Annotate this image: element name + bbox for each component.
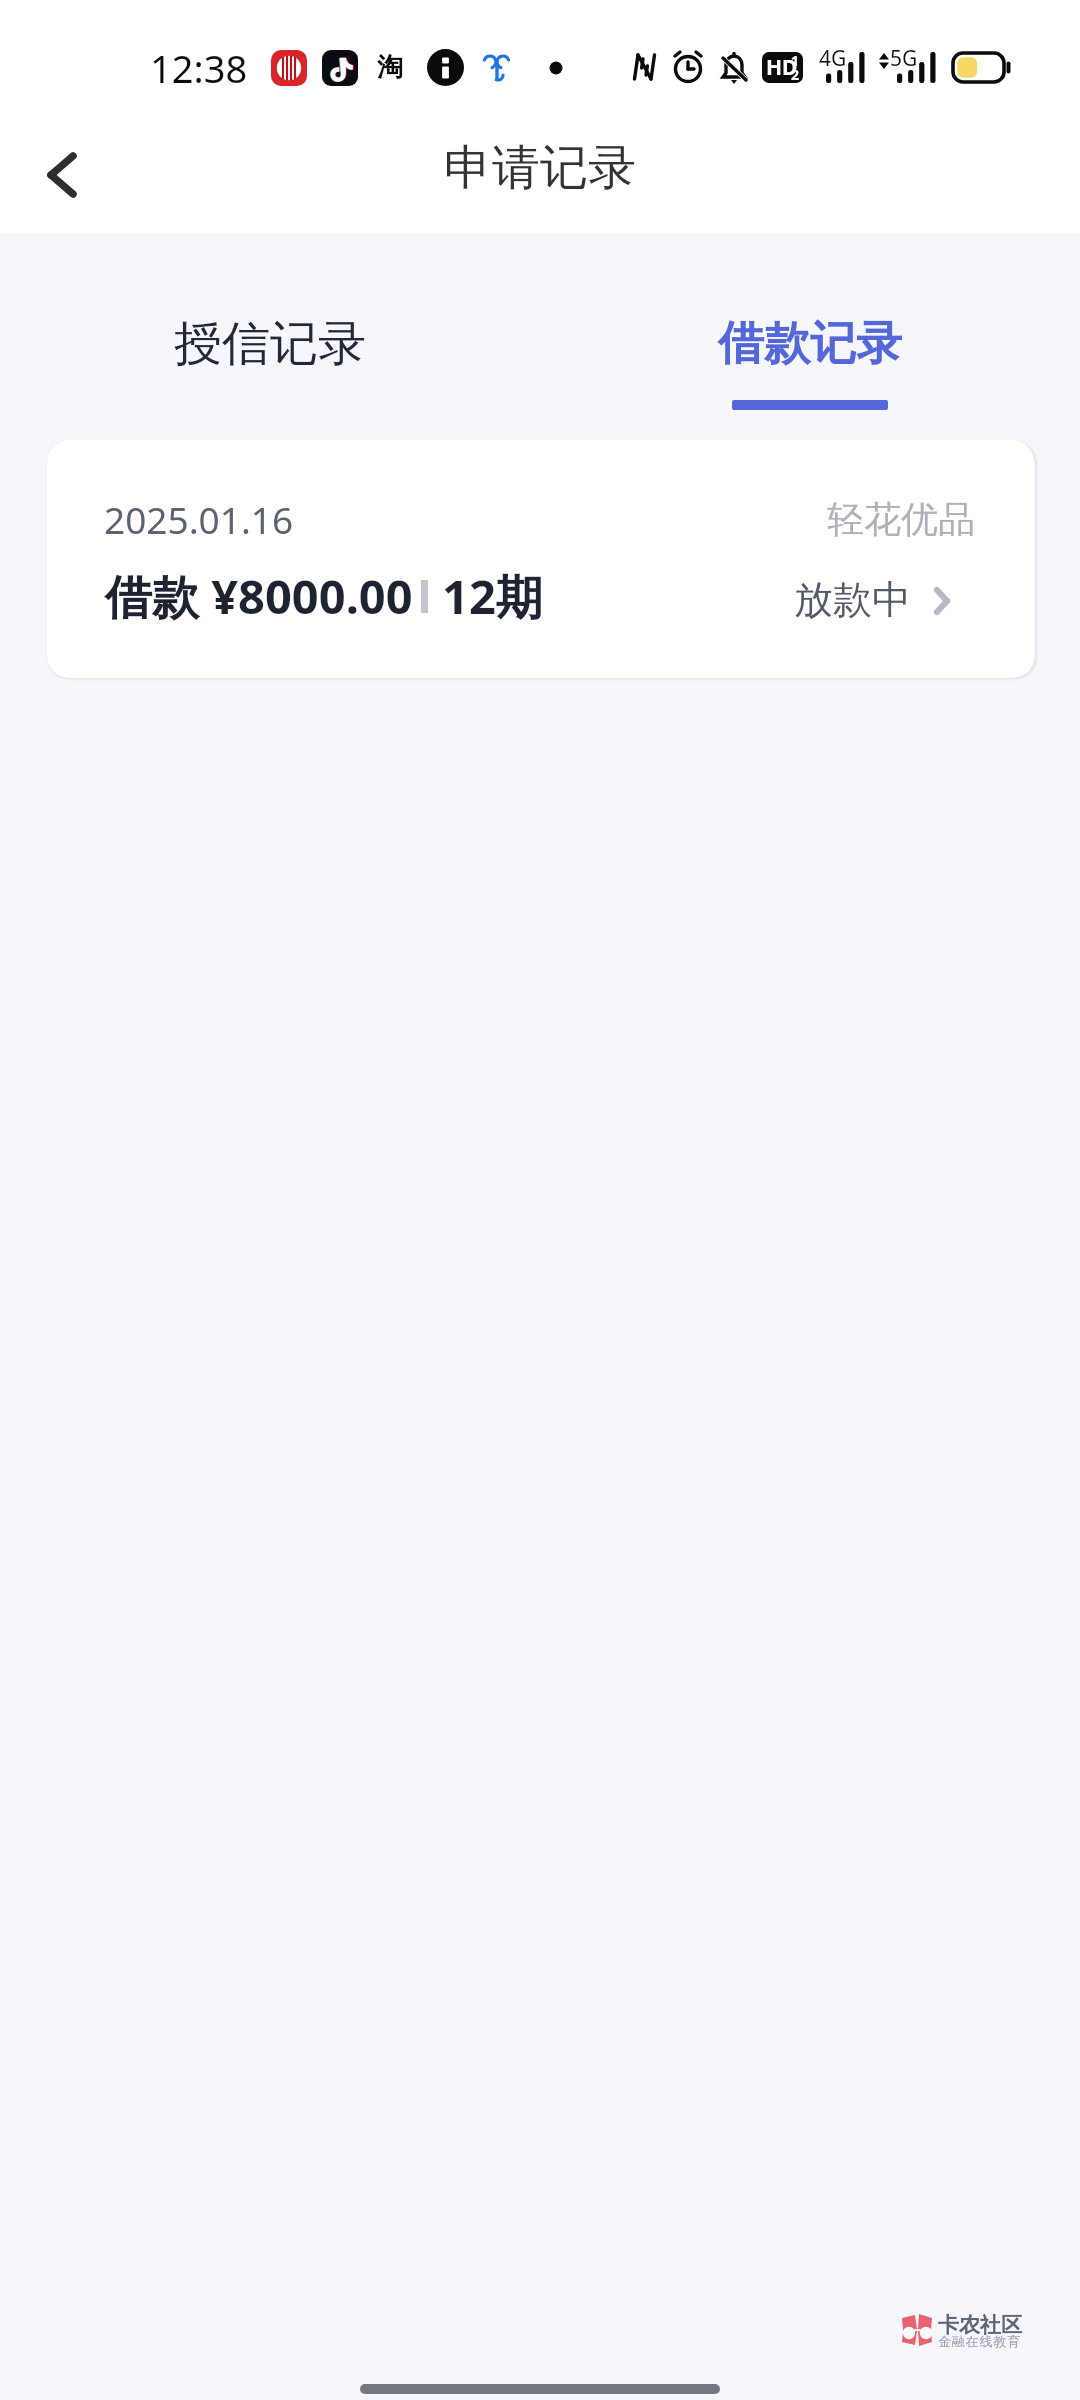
staticText: 卡农社区	[938, 2312, 1022, 2338]
staticText: 轻花优品	[827, 496, 975, 543]
staticText: 授信记录	[174, 314, 366, 374]
staticText: HD	[766, 53, 798, 82]
staticText: 金融在线教育	[938, 2333, 1021, 2349]
staticText: 12期	[442, 564, 543, 628]
staticText: 5G	[890, 44, 918, 73]
staticText: 1	[791, 52, 800, 70]
staticText: 2	[791, 65, 800, 83]
button[interactable]: 授信记录	[0, 235, 540, 440]
staticText: 4G	[819, 44, 847, 73]
staticText: 2025.01.16	[104, 494, 294, 544]
staticText: 12:38	[150, 42, 248, 94]
staticText: 放款中	[794, 575, 911, 624]
staticText: 借款 ¥8000.00	[105, 564, 413, 628]
button[interactable]: Back	[26, 138, 98, 210]
staticText: 淘	[377, 51, 403, 84]
button[interactable]: 2025.01.16	[47, 440, 1034, 678]
button[interactable]: 借款记录	[540, 235, 1080, 440]
staticText: 借款记录	[718, 315, 902, 373]
staticText: 申请记录	[444, 138, 636, 198]
